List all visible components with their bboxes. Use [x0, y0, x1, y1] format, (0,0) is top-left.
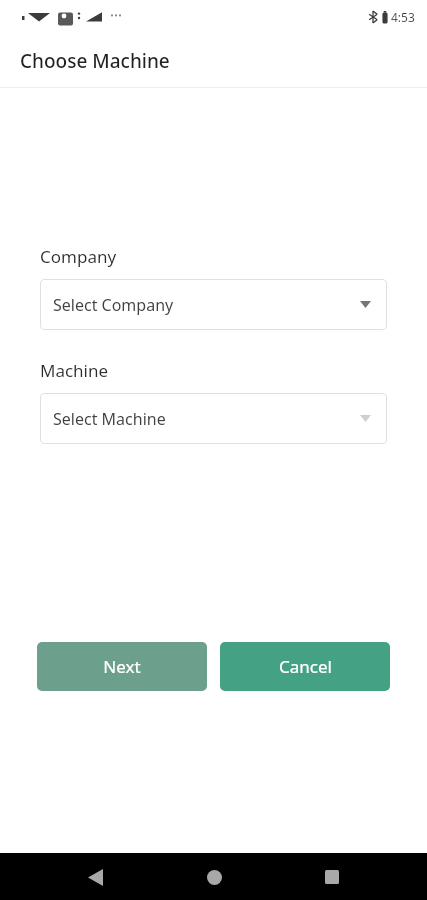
- button[interactable]: Select Company: [40, 279, 387, 330]
- button[interactable]: Select Machine: [40, 393, 387, 444]
- staticText: 4:53: [391, 9, 415, 25]
- staticText: Next: [103, 655, 141, 678]
- button[interactable]: Back: [75, 857, 115, 897]
- staticText: Select Company: [53, 294, 360, 316]
- staticText: Cancel: [279, 655, 332, 678]
- staticText: Machine: [40, 359, 109, 382]
- staticText: Company: [40, 245, 117, 268]
- button[interactable]: Cancel: [220, 642, 390, 691]
- button[interactable]: Next: [37, 642, 207, 691]
- staticText: Choose Machine: [20, 48, 170, 74]
- button[interactable]: Home: [194, 857, 234, 897]
- button[interactable]: Recent apps: [312, 857, 352, 897]
- staticText: Select Machine: [53, 408, 360, 430]
